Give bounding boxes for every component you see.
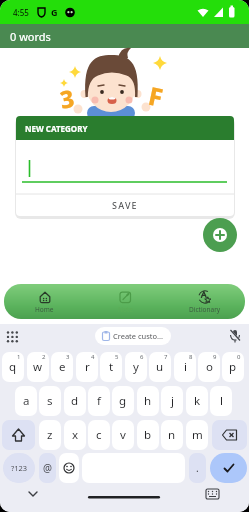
staticText: j (171, 393, 174, 409)
staticText: 3 (57, 81, 77, 116)
staticText: k (194, 393, 201, 409)
staticText: m (192, 427, 203, 443)
staticText: w (33, 359, 43, 375)
button[interactable]: e (51, 352, 73, 382)
button[interactable]: j (161, 386, 183, 416)
staticText: 2 (42, 353, 46, 361)
staticText: 4:55 (13, 7, 29, 18)
staticText: o (206, 359, 213, 375)
button[interactable]: s (39, 386, 61, 416)
button[interactable]: ?123 (3, 453, 35, 483)
staticText: @ (43, 461, 52, 475)
staticText: i (184, 359, 187, 375)
staticText: b (144, 427, 152, 443)
staticText: 9 (213, 353, 217, 361)
staticText: v (120, 427, 126, 443)
button[interactable]: t (100, 352, 122, 382)
button[interactable]: b (137, 420, 159, 450)
staticText: 5 (115, 353, 119, 361)
staticText: d (71, 393, 79, 409)
staticText: h (144, 393, 152, 409)
button[interactable]: . (189, 453, 206, 483)
button[interactable]: Home (4, 284, 85, 319)
button[interactable]: a (15, 386, 37, 416)
staticText: f (97, 393, 101, 409)
staticText: u (156, 359, 164, 375)
button[interactable]: z (39, 420, 61, 450)
staticText: 3 (66, 353, 70, 361)
staticText: 8 (189, 353, 193, 361)
button[interactable]: f (88, 386, 110, 416)
staticText: q (9, 359, 17, 375)
button[interactable] (2, 420, 35, 450)
button[interactable]: r (76, 352, 98, 382)
staticText: n (168, 427, 176, 443)
button[interactable]: o (198, 352, 220, 382)
button[interactable]: m (186, 420, 208, 450)
button[interactable]: p (222, 352, 244, 382)
staticText: 1 (17, 353, 21, 361)
button[interactable]: SAVE (95, 194, 155, 216)
staticText: y (133, 359, 139, 375)
button[interactable] (59, 453, 79, 483)
staticText: 4 (91, 353, 95, 361)
staticText: 0 words (10, 29, 51, 44)
button[interactable]: Note (85, 284, 165, 319)
button[interactable]: @ (39, 453, 56, 483)
staticText: 0 (237, 353, 241, 361)
button[interactable] (212, 420, 247, 450)
button[interactable]: u (149, 352, 171, 382)
button[interactable]: i (174, 352, 196, 382)
staticText: g (119, 393, 127, 409)
button[interactable]: x (64, 420, 86, 450)
staticText: t (109, 359, 114, 375)
staticText: r (85, 359, 90, 375)
button[interactable]: Dictionary (165, 284, 245, 319)
staticText: . (196, 461, 199, 475)
staticText: Note (118, 305, 133, 314)
staticText: F (146, 78, 166, 114)
staticText: l (220, 393, 223, 409)
staticText: a (23, 393, 30, 409)
staticText: e (59, 359, 66, 375)
staticText: SAVE (112, 199, 138, 211)
staticText: 7 (164, 353, 168, 361)
staticText: Create custo... (113, 331, 164, 341)
button[interactable]: n (161, 420, 183, 450)
staticText: NEW CATEGORY (25, 123, 88, 134)
button[interactable]: y (125, 352, 147, 382)
staticText: z (47, 427, 53, 443)
button[interactable]: g (112, 386, 134, 416)
staticText: ?123 (11, 463, 28, 473)
staticText: x (72, 427, 79, 443)
staticText: G (51, 6, 58, 18)
button[interactable] (203, 218, 237, 252)
button[interactable]: d (64, 386, 86, 416)
button[interactable] (210, 453, 247, 483)
button[interactable]: l (210, 386, 232, 416)
staticText: Home (35, 305, 54, 314)
button[interactable]: v (112, 420, 134, 450)
staticText: c (96, 427, 102, 443)
button[interactable]: w (27, 352, 49, 382)
staticText: p (229, 359, 237, 375)
staticText: Dictionary (189, 305, 221, 314)
staticText: s (47, 393, 53, 409)
staticText: 6 (140, 353, 144, 361)
button[interactable]: h (137, 386, 159, 416)
button[interactable]: c (88, 420, 110, 450)
button[interactable]: q (2, 352, 24, 382)
button[interactable]: k (186, 386, 208, 416)
button[interactable]: Create custo... (95, 327, 171, 345)
